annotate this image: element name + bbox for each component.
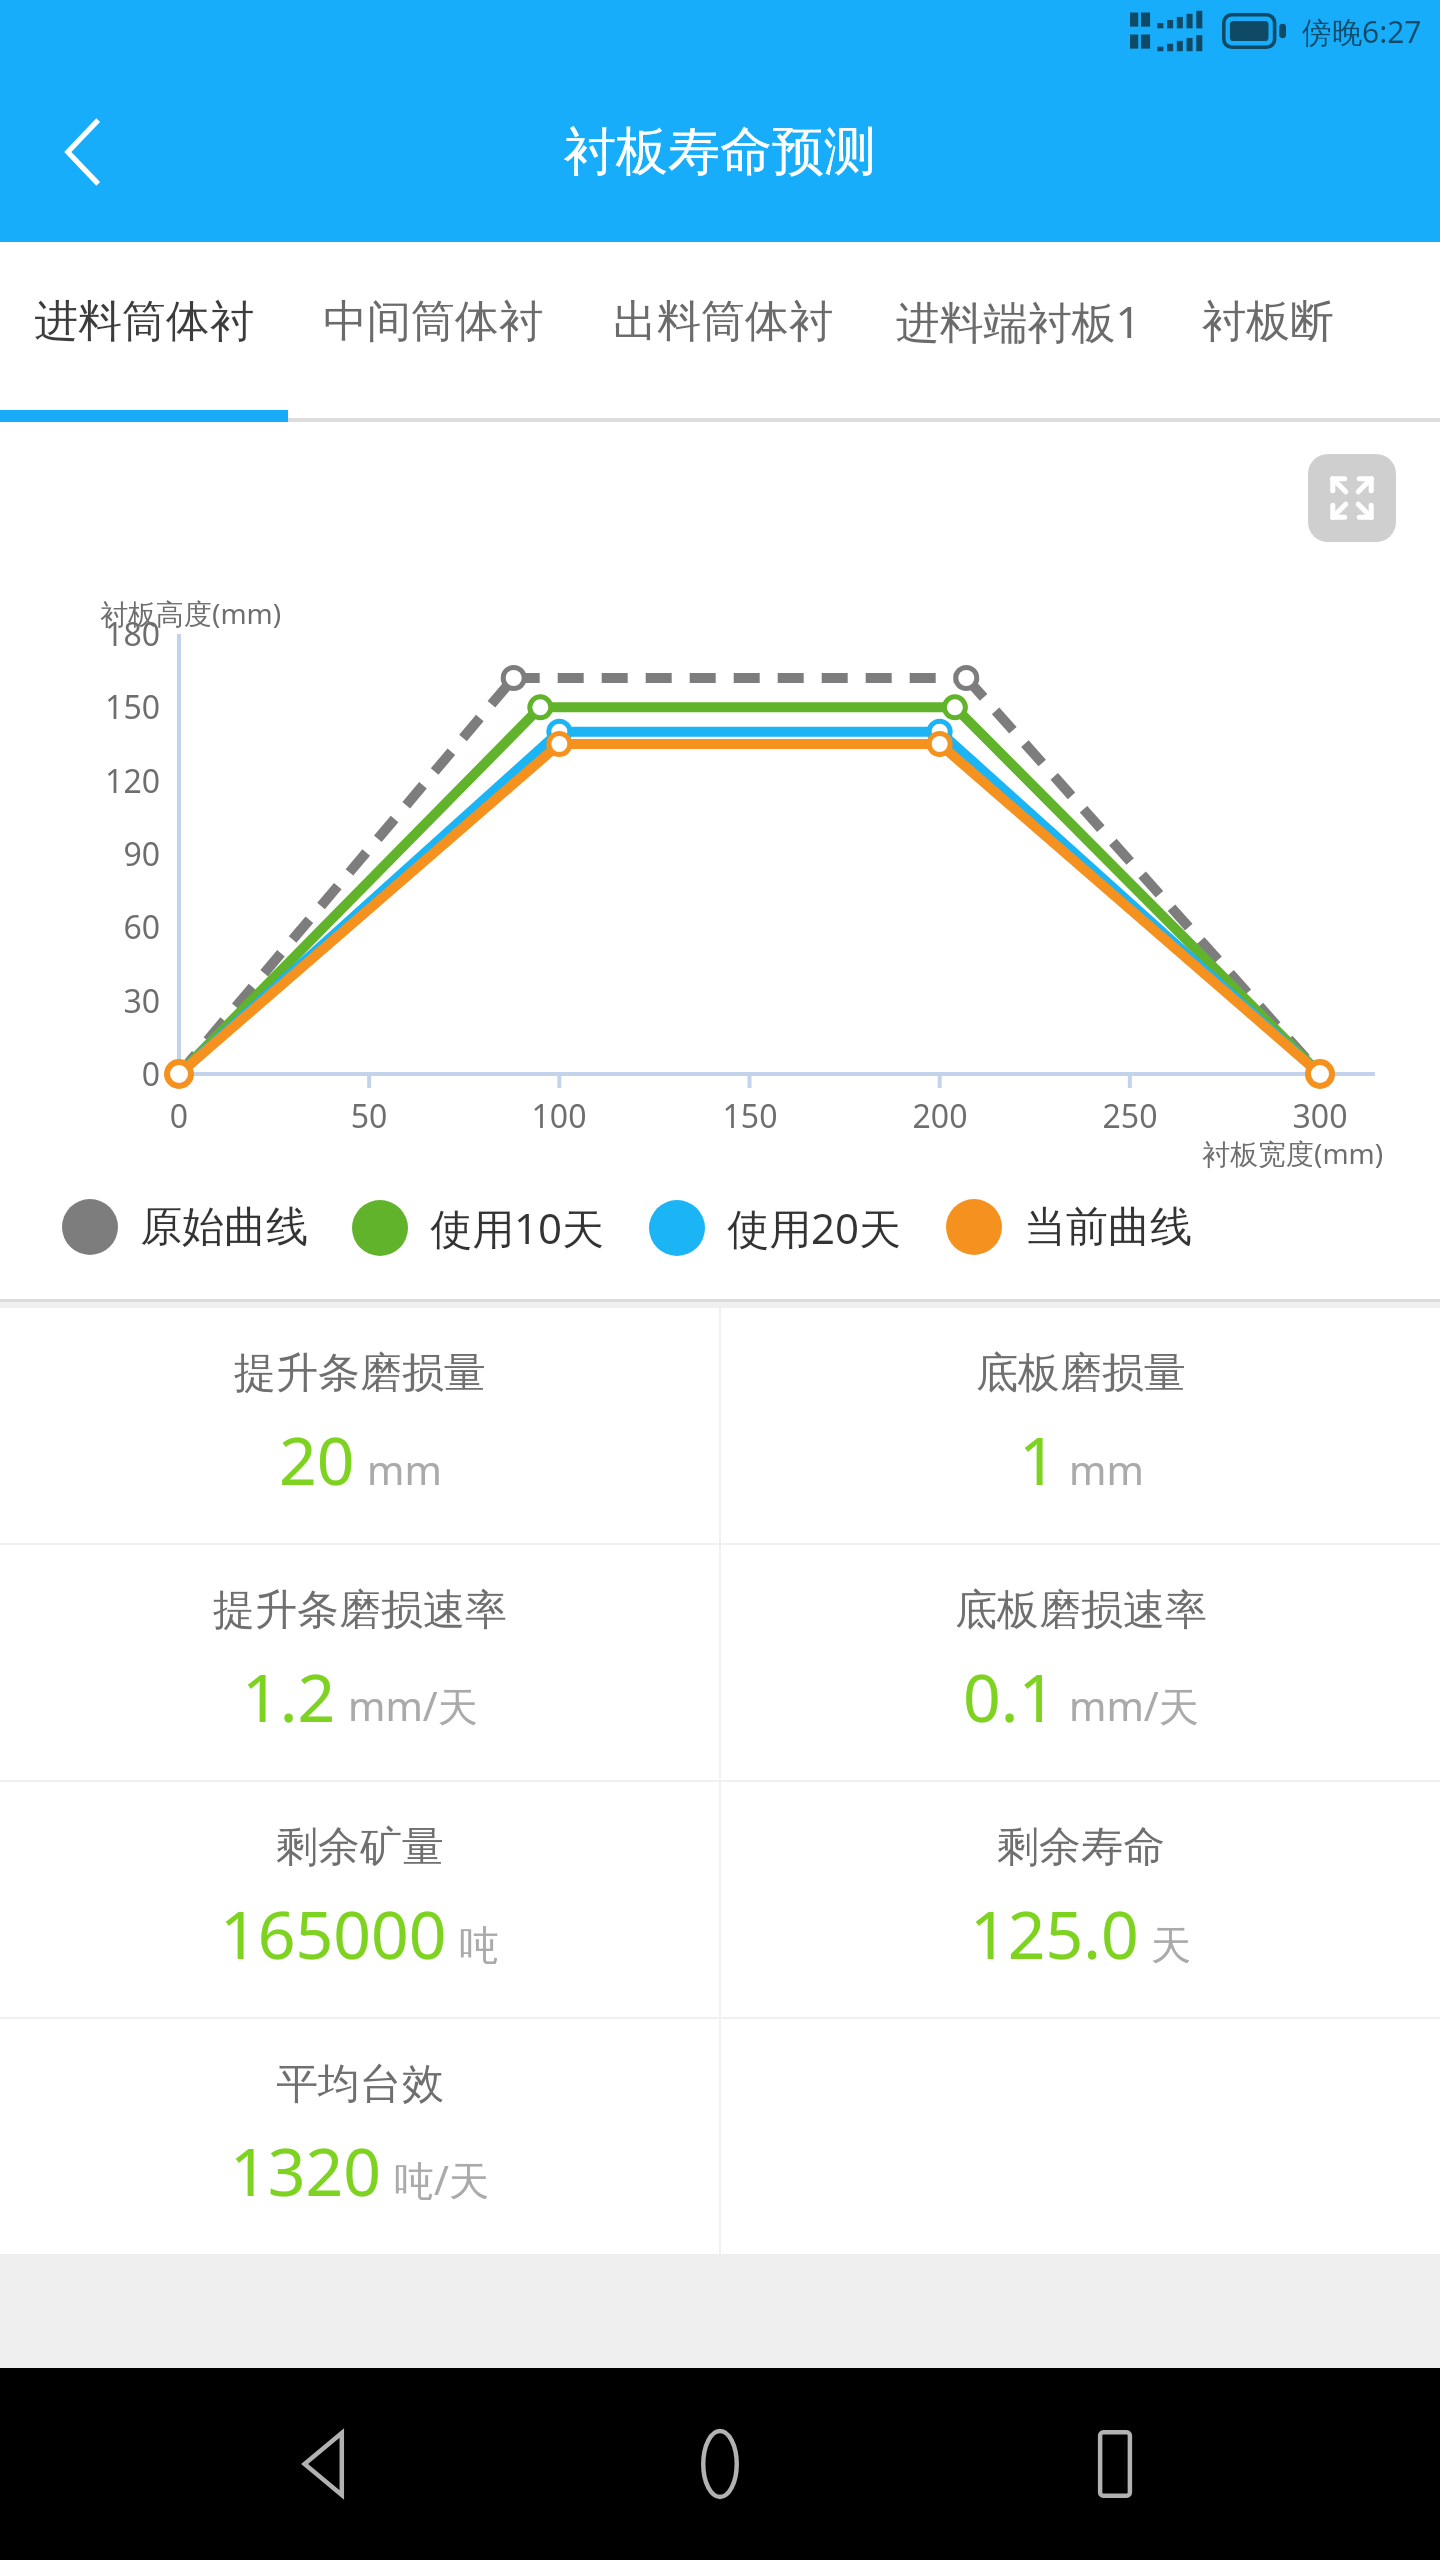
staticText: 平均台效 [276, 2058, 444, 2111]
staticText: 傍晚6:27 [1302, 11, 1422, 52]
staticText: 原始曲线 [140, 1201, 308, 1254]
staticText: 底板磨损速率 [955, 1584, 1207, 1637]
staticText: 进料筒体衬 [34, 294, 254, 349]
button[interactable]: 进料端衬板1 [868, 242, 1168, 400]
button[interactable]: 提升条磨损速率 [0, 1545, 719, 1780]
staticText: 提升条磨损速率 [213, 1584, 507, 1637]
button[interactable]: Fullscreen [1308, 454, 1396, 542]
button[interactable]: 剩余矿量 [0, 1782, 719, 2017]
staticText: 使用10天 [430, 1199, 605, 1256]
staticText: 150 [48, 685, 160, 729]
staticText: 20 [279, 1414, 355, 1504]
staticText: 300 [1255, 1094, 1385, 1138]
staticText: 90 [48, 832, 160, 876]
staticText: 60 [48, 905, 160, 949]
button[interactable]: 原始曲线 [62, 1199, 308, 1255]
staticText: 150 [685, 1094, 815, 1138]
staticText: mm [367, 1442, 442, 1496]
staticText: 提升条磨损量 [234, 1347, 486, 1400]
staticText: 0 [114, 1094, 244, 1138]
staticText: 吨 [459, 1920, 499, 1970]
staticText: 吨/天 [394, 2152, 489, 2207]
staticText: 衬板寿命预测 [564, 119, 876, 185]
button[interactable]: 进料筒体衬 [0, 242, 288, 400]
staticText: 衬板宽度(mm) [1202, 1134, 1384, 1172]
staticText: 中间筒体衬 [323, 294, 543, 349]
staticText: 100 [494, 1094, 624, 1138]
staticText: 50 [304, 1094, 434, 1138]
staticText: 30 [48, 979, 160, 1023]
staticText: 0.1 [963, 1651, 1057, 1741]
button[interactable]: 衬板断 [1168, 242, 1368, 400]
button[interactable]: 底板磨损量 [721, 1308, 1440, 1543]
button[interactable]: 中间筒体衬 [288, 242, 578, 400]
staticText: 1320 [230, 2125, 382, 2215]
button[interactable]: 使用20天 [649, 1199, 902, 1256]
button[interactable]: 提升条磨损量 [0, 1308, 719, 1543]
button[interactable]: 剩余寿命 [721, 1782, 1440, 2017]
staticText: 衬板断 [1202, 294, 1334, 349]
button[interactable]: 平均台效 [0, 2019, 719, 2254]
staticText: 125.0 [970, 1888, 1139, 1978]
staticText: 衬板高度(mm) [100, 594, 282, 632]
staticText: 180 [48, 612, 160, 656]
button[interactable]: 当前曲线 [946, 1199, 1192, 1255]
staticText: 出料筒体衬 [613, 294, 833, 349]
staticText: 200 [875, 1094, 1005, 1138]
staticText: 250 [1065, 1094, 1195, 1138]
staticText: mm/天 [348, 1678, 478, 1733]
staticText: mm [1069, 1442, 1144, 1496]
staticText: 1 [1019, 1414, 1057, 1504]
staticText: 剩余矿量 [276, 1821, 444, 1874]
staticText: 0 [48, 1052, 160, 1096]
button[interactable]: 出料筒体衬 [578, 242, 868, 400]
button[interactable]: Recents [1045, 2394, 1185, 2534]
staticText: 当前曲线 [1024, 1201, 1192, 1254]
button[interactable]: Back [255, 2394, 395, 2534]
button[interactable]: 使用10天 [352, 1199, 605, 1256]
staticText: 120 [48, 759, 160, 803]
staticText: 底板磨损量 [976, 1347, 1186, 1400]
staticText: 1.2 [242, 1651, 336, 1741]
staticText: 剩余寿命 [997, 1821, 1165, 1874]
staticText: 165000 [220, 1888, 447, 1978]
button[interactable]: 底板磨损速率 [721, 1545, 1440, 1780]
staticText: 天 [1151, 1920, 1191, 1970]
button[interactable]: Home [650, 2394, 790, 2534]
staticText: mm/天 [1069, 1678, 1199, 1733]
staticText: 进料端衬板1 [895, 291, 1141, 351]
button[interactable]: Back [28, 97, 138, 207]
staticText: 使用20天 [727, 1199, 902, 1256]
